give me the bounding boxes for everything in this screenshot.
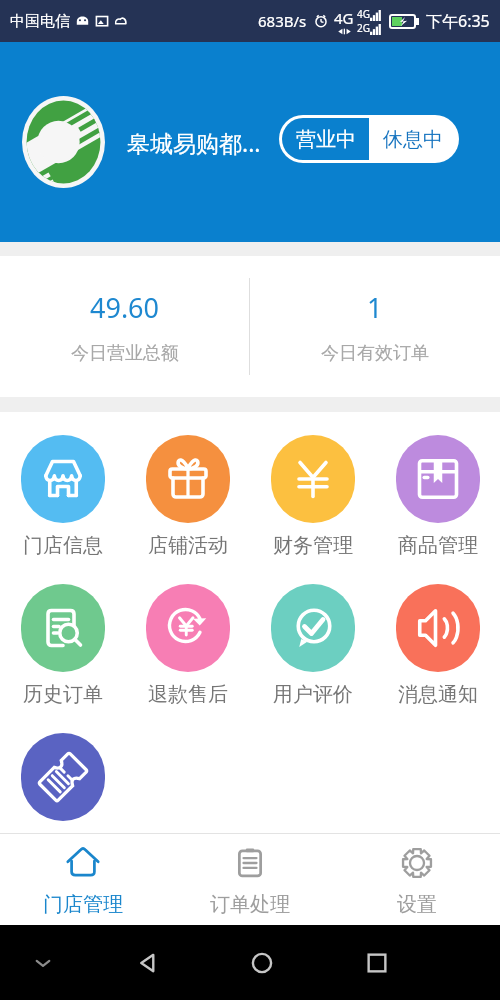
button[interactable]: 营业中 <box>282 118 369 160</box>
button[interactable]: Hide navigation bar <box>30 950 56 976</box>
button[interactable]: 49.60 <box>0 256 249 397</box>
staticText: 1 <box>367 289 383 326</box>
staticText: 设置 <box>397 892 437 917</box>
staticText: 下午6:35 <box>426 10 490 32</box>
button[interactable]: 门店信息 <box>0 412 125 561</box>
staticText: 退款售后 <box>148 682 228 707</box>
staticText: 用户评价 <box>273 682 353 707</box>
staticText: 4G <box>334 8 354 28</box>
button[interactable]: 退款售后 <box>125 561 250 710</box>
button[interactable]: 订单处理 <box>166 834 333 925</box>
staticText: 财务管理 <box>273 533 353 558</box>
staticText: 皋城易购都... <box>127 127 261 158</box>
staticText: 4G <box>357 7 370 21</box>
button[interactable]: 店铺活动 <box>125 412 250 561</box>
staticText: 订单处理 <box>210 892 290 917</box>
staticText: 消息通知 <box>398 682 478 707</box>
button[interactable]: 消息通知 <box>375 561 500 710</box>
button[interactable]: 门店管理 <box>0 834 166 925</box>
staticText: 门店信息 <box>23 533 103 558</box>
button[interactable]: Back <box>126 941 170 985</box>
staticText: 店铺活动 <box>148 533 228 558</box>
staticText: 683B/s <box>258 11 307 31</box>
button[interactable]: 休息中 <box>369 118 456 160</box>
staticText: 门店管理 <box>43 892 123 917</box>
button[interactable]: 1 <box>250 256 500 397</box>
staticText: 历史订单 <box>23 682 103 707</box>
staticText: 商品管理 <box>398 533 478 558</box>
button[interactable]: 设置 <box>333 834 500 925</box>
button[interactable]: 用户评价 <box>250 561 375 710</box>
button[interactable]: 商品管理 <box>375 412 500 561</box>
button[interactable] <box>0 710 125 833</box>
staticText: 今日营业总额 <box>71 342 179 365</box>
staticText: 49.60 <box>90 289 160 326</box>
staticText: 今日有效订单 <box>321 342 429 365</box>
staticText: 营业中 <box>296 127 356 152</box>
button[interactable]: Home <box>240 941 284 985</box>
staticText: 休息中 <box>383 127 443 152</box>
staticText: 中国电信 <box>10 12 70 31</box>
staticText: 2G <box>357 21 370 35</box>
button[interactable]: Recent apps <box>355 941 399 985</box>
button[interactable]: 财务管理 <box>250 412 375 561</box>
button[interactable]: 历史订单 <box>0 561 125 710</box>
